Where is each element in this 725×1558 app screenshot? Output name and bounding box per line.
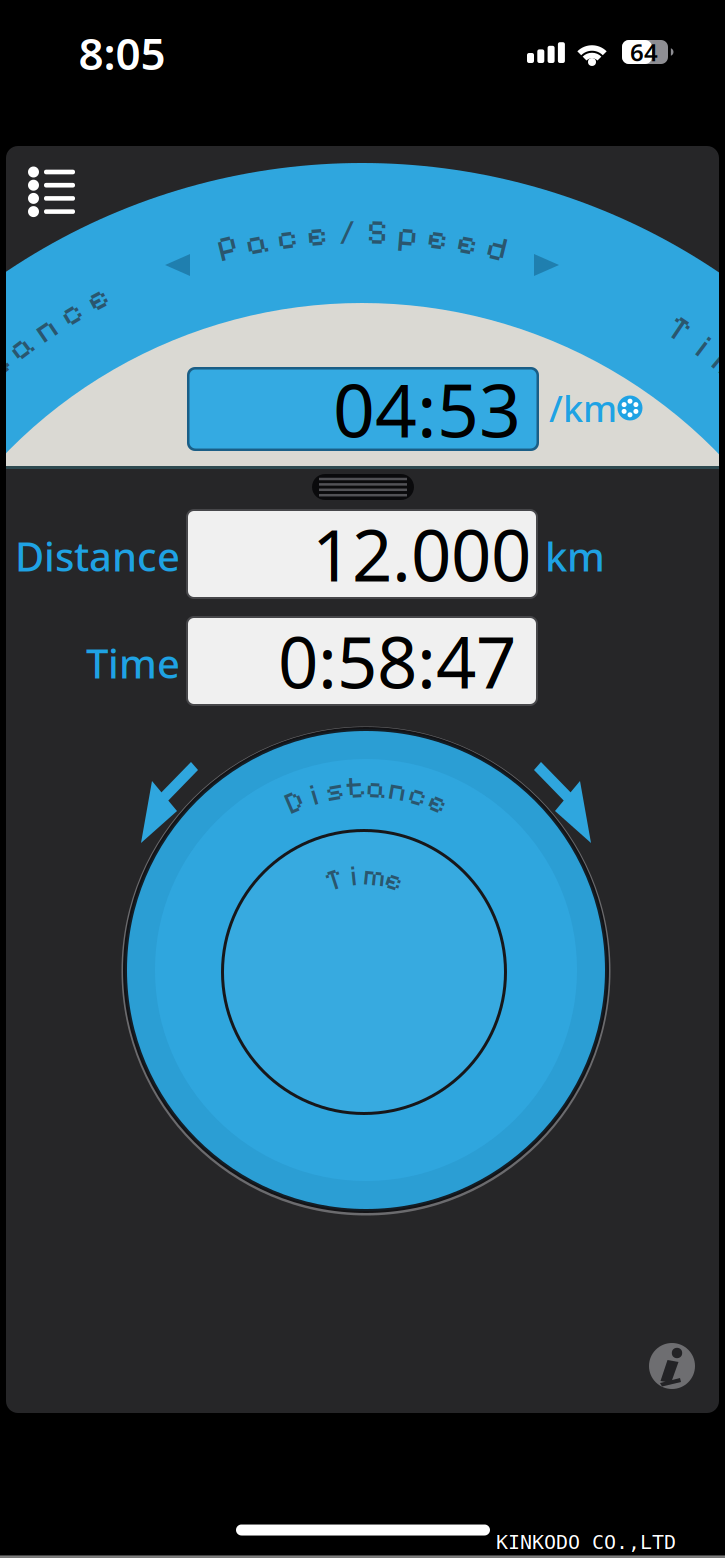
staticText: t	[345, 769, 366, 806]
staticText: 04:53	[333, 360, 521, 458]
staticText: P	[217, 227, 237, 269]
staticText: e	[87, 277, 107, 318]
staticText: i	[700, 325, 708, 367]
button[interactable]: Pace	[187, 367, 539, 451]
staticText: /km	[549, 384, 617, 432]
staticText: d	[487, 227, 507, 269]
staticText: m	[363, 858, 385, 893]
staticText: Time	[86, 636, 180, 689]
staticText: n	[35, 308, 55, 349]
staticText: s	[325, 771, 343, 808]
staticText: D	[285, 783, 303, 820]
button[interactable]: Menu	[26, 165, 82, 219]
staticText: Distance	[15, 529, 180, 582]
button[interactable]: Info	[649, 1343, 695, 1389]
staticText: 8:05	[78, 24, 165, 82]
staticText: c	[277, 216, 297, 258]
staticText: km	[545, 529, 605, 582]
staticText: p	[397, 213, 417, 255]
staticText: c	[60, 292, 80, 333]
button[interactable]: Distance value	[186, 509, 538, 599]
staticText: a	[245, 221, 268, 263]
staticText: 64	[630, 36, 658, 68]
staticText: e	[457, 221, 477, 263]
staticText: i	[310, 776, 317, 813]
staticText: e	[385, 862, 402, 897]
staticText: e	[427, 216, 447, 258]
button[interactable]: Handle	[308, 472, 418, 502]
staticText: n	[388, 771, 406, 808]
staticText: T	[669, 308, 689, 349]
staticText: KINKODO CO.,LTD	[496, 1531, 676, 1553]
staticText: S	[367, 211, 387, 253]
staticText: c	[409, 776, 427, 813]
staticText: m	[714, 344, 725, 386]
staticText: T	[325, 862, 342, 897]
staticText: i	[350, 858, 357, 893]
staticText: e	[429, 783, 447, 820]
staticText: 0:58:47	[278, 614, 516, 708]
staticText: a	[9, 325, 32, 367]
staticText: /	[338, 211, 356, 253]
staticText: a	[366, 769, 387, 806]
staticText: 12.000	[312, 507, 531, 601]
staticText: t	[0, 344, 8, 386]
staticText: e	[307, 213, 327, 255]
button[interactable]: Rotary dial	[96, 700, 636, 1240]
button[interactable]: Time value	[186, 616, 538, 706]
